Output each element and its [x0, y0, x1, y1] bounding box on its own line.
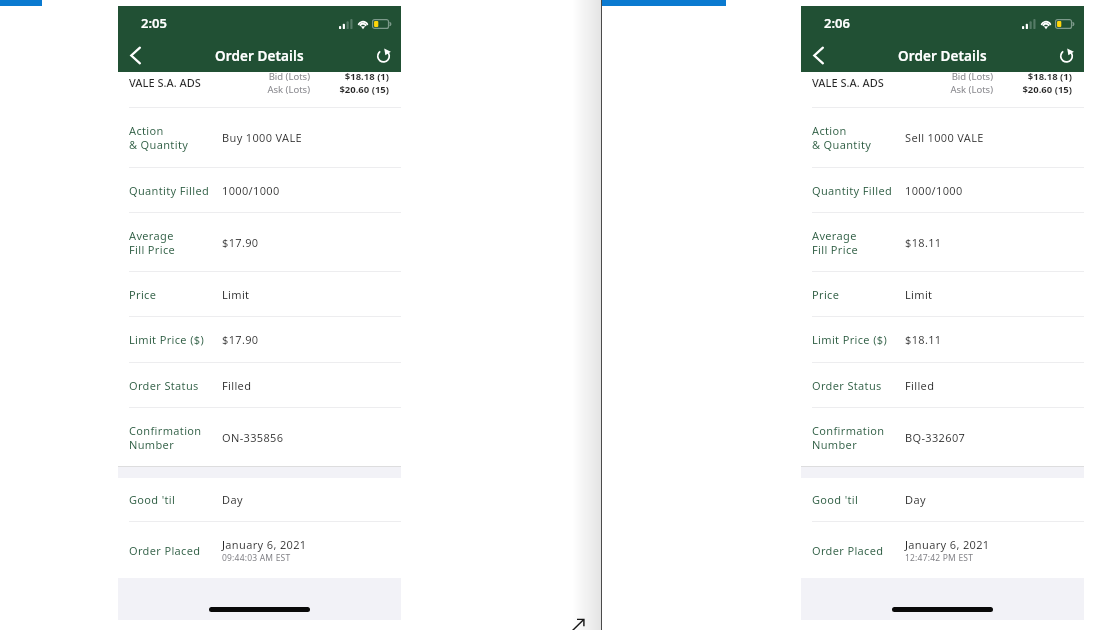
staticText: Filled [222, 378, 252, 393]
staticText: 2:06 [824, 14, 850, 32]
staticText: $18.11 [905, 332, 942, 347]
staticText: Day [222, 492, 243, 507]
button[interactable]: Quantity Filled [118, 168, 401, 212]
staticText: Order Status [812, 378, 882, 393]
staticText: Bid (Lots) [941, 70, 993, 83]
staticText: Action & Quantity [812, 123, 872, 152]
staticText: 1000/1000 [222, 183, 280, 198]
staticText: January 6, 2021 [222, 537, 307, 552]
staticText: BQ-332607 [905, 430, 966, 445]
staticText: Order Details [215, 47, 304, 65]
staticText: Order Status [129, 378, 199, 393]
staticText: $17.90 [222, 235, 259, 250]
staticText: Sell 1000 VALE [905, 130, 984, 145]
staticText: Order Placed [129, 543, 201, 558]
staticText: Quantity Filled [812, 183, 893, 198]
button[interactable]: Average Fill Price [118, 213, 401, 271]
staticText: Average Fill Price [129, 228, 176, 257]
button[interactable]: Confirmation Number [118, 408, 401, 466]
button[interactable]: Action & Quantity [801, 108, 1084, 167]
staticText: ON-335856 [222, 430, 284, 445]
staticText: Order Placed [812, 543, 884, 558]
staticText: Ask (Lots) [941, 83, 993, 96]
button[interactable]: Order Status [118, 363, 401, 407]
staticText: Price [129, 287, 157, 302]
staticText: Quantity Filled [129, 183, 210, 198]
button[interactable]: Limit Price ($) [801, 317, 1084, 362]
staticText: Action & Quantity [129, 123, 189, 152]
staticText: 09:44:03 AM EST [222, 552, 291, 564]
staticText: 2:05 [141, 14, 167, 32]
staticText: Limit [222, 287, 250, 302]
staticText: 12:47:42 PM EST [905, 552, 974, 564]
button[interactable]: Order Status [801, 363, 1084, 407]
button[interactable]: Good 'til [118, 478, 401, 521]
staticText: Good 'til [129, 492, 176, 507]
staticText: Filled [905, 378, 935, 393]
staticText: Buy 1000 VALE [222, 130, 303, 145]
staticText: $20.60 (15) [1015, 83, 1072, 96]
button[interactable]: Confirmation Number [801, 408, 1084, 466]
staticText: 1000/1000 [905, 183, 963, 198]
staticText: VALE S.A. ADS [129, 75, 201, 90]
staticText: Bid (Lots) [258, 70, 310, 83]
staticText: $18.18 (1) [1015, 70, 1072, 83]
button[interactable]: Order Placed [118, 522, 401, 578]
staticText: $17.90 [222, 332, 259, 347]
button[interactable]: Refresh [369, 41, 397, 69]
button[interactable]: Back [804, 41, 832, 69]
staticText: VALE S.A. ADS [812, 75, 884, 90]
staticText: $20.60 (15) [332, 83, 389, 96]
staticText: Price [812, 287, 840, 302]
staticText: Day [905, 492, 926, 507]
staticText: Ask (Lots) [258, 83, 310, 96]
staticText: $18.18 (1) [332, 70, 389, 83]
staticText: Confirmation Number [812, 423, 885, 452]
button[interactable]: Average Fill Price [801, 213, 1084, 271]
staticText: January 6, 2021 [905, 537, 990, 552]
staticText: Limit [905, 287, 933, 302]
button[interactable]: Action & Quantity [118, 108, 401, 167]
staticText: Average Fill Price [812, 228, 859, 257]
button[interactable]: Expand [571, 617, 586, 630]
staticText: Good 'til [812, 492, 859, 507]
button[interactable]: Price [801, 272, 1084, 316]
staticText: Order Details [898, 47, 987, 65]
button[interactable]: Order Placed [801, 522, 1084, 578]
button[interactable]: Price [118, 272, 401, 316]
staticText: Confirmation Number [129, 423, 202, 452]
button[interactable]: Limit Price ($) [118, 317, 401, 362]
button[interactable]: Back [121, 41, 149, 69]
staticText: Limit Price ($) [129, 332, 205, 347]
staticText: Limit Price ($) [812, 332, 888, 347]
button[interactable]: Good 'til [801, 478, 1084, 521]
button[interactable]: Quantity Filled [801, 168, 1084, 212]
staticText: $18.11 [905, 235, 942, 250]
button[interactable]: Refresh [1052, 41, 1080, 69]
